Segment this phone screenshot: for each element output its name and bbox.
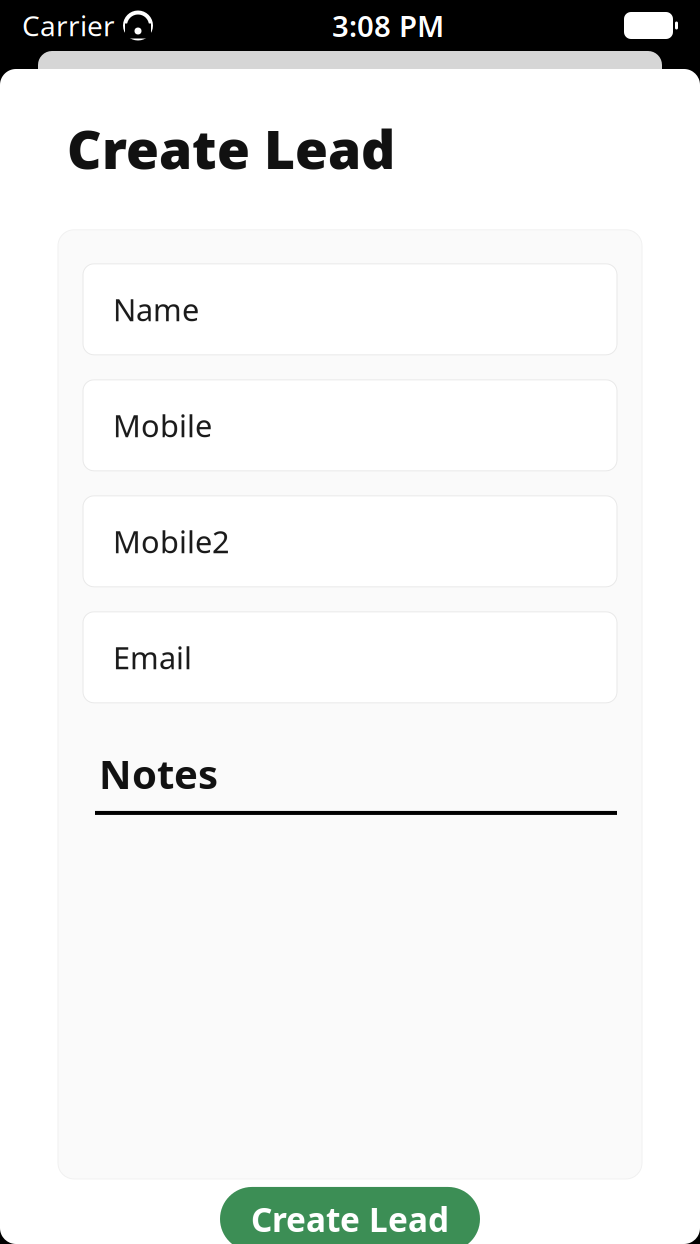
button[interactable]: Email xyxy=(83,612,617,703)
staticText: Carrier xyxy=(22,7,115,44)
staticText: Email xyxy=(113,637,192,678)
staticText: Notes xyxy=(99,747,218,800)
button[interactable]: Name xyxy=(83,264,617,355)
button[interactable]: Mobile xyxy=(83,380,617,471)
staticText: Name xyxy=(113,289,199,330)
button[interactable]: Notes xyxy=(83,747,617,815)
staticText: Create Lead xyxy=(67,113,395,184)
staticText: 3:08 PM xyxy=(332,6,444,45)
staticText: Mobile2 xyxy=(113,521,230,562)
button[interactable]: Mobile2 xyxy=(83,496,617,587)
button[interactable]: Create Lead xyxy=(220,1187,480,1244)
staticText: Mobile xyxy=(113,405,212,446)
staticText: Create Lead xyxy=(251,1197,449,1241)
